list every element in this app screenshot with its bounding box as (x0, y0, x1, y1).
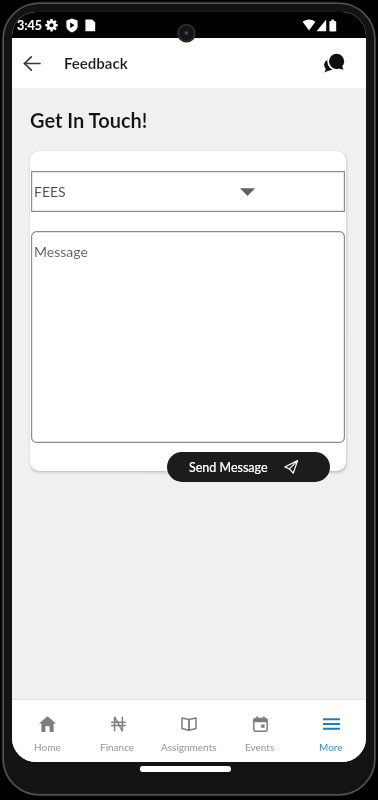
button[interactable]: Home (12, 699, 82, 762)
button[interactable] (18, 49, 46, 77)
staticText: Get In Touch! (30, 108, 148, 132)
staticText: Finance (100, 741, 135, 753)
staticText: 3:45 (17, 18, 42, 33)
staticText: Home (34, 741, 61, 753)
button[interactable]: More (295, 699, 366, 762)
staticText: More (319, 741, 343, 753)
button[interactable]: Finance (82, 699, 153, 762)
button[interactable]: Message (31, 231, 345, 443)
button[interactable] (320, 50, 348, 76)
staticText: Send Message (189, 460, 268, 475)
button[interactable]: Events (224, 699, 295, 762)
button[interactable]: Send Message (167, 452, 330, 482)
button[interactable]: FEES (31, 171, 345, 212)
staticText: Message (34, 243, 88, 260)
staticText: Feedback (64, 54, 128, 72)
staticText: Events (245, 741, 275, 753)
staticText: FEES (34, 183, 66, 200)
button[interactable]: Assignments (153, 699, 224, 762)
staticText: Assignments (161, 741, 217, 753)
